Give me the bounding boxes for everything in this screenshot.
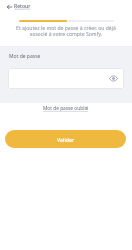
button[interactable]: Valider [5,130,126,148]
button[interactable]: Afficher le mot de passe [8,68,124,89]
staticText: Mot de passe [9,53,41,60]
button[interactable]: Mot de passe oublié [41,104,91,113]
button[interactable]: Retour [7,1,31,13]
button[interactable]: Afficher le mot de passe [109,74,118,83]
staticText: Valider [57,136,75,143]
staticText: Et ajoutez le mot de passe à créer, ou d… [0,25,132,38]
staticText: Retour [14,3,31,10]
